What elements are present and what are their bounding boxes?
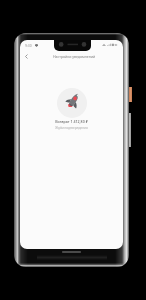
staticText: Настройки уведомлений	[53, 54, 96, 59]
staticText: Возврат 1 412,80 ₽	[20, 119, 123, 124]
staticText: Ждём подтверждения	[20, 126, 123, 130]
staticText: 9:30	[25, 43, 32, 48]
button[interactable]: Назад	[20, 50, 33, 62]
